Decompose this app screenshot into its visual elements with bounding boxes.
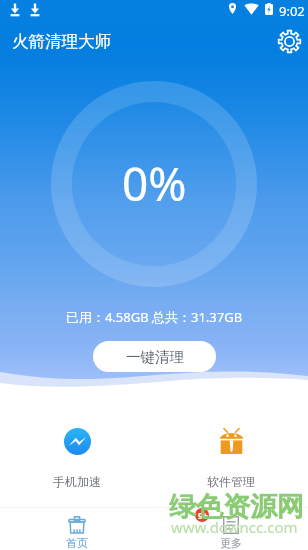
staticText: 首页 <box>66 536 88 550</box>
button[interactable]: 软件管理 <box>154 424 308 493</box>
staticText: www.downcc.com <box>171 517 298 537</box>
staticText: 软件管理 <box>207 474 255 489</box>
staticText: 手机加速 <box>53 474 101 489</box>
staticText: 一键清理 <box>126 348 184 366</box>
staticText: 更多 <box>220 536 242 550</box>
staticText: 9+ <box>198 510 208 522</box>
staticText: 9:02 <box>279 2 305 20</box>
staticText: 绿色资源网 <box>169 490 304 524</box>
button[interactable]: 更多 <box>154 508 308 550</box>
staticText: 火箭清理大师 <box>12 31 111 52</box>
button[interactable]: Settings <box>274 26 304 56</box>
button[interactable]: 一键清理 <box>93 341 216 372</box>
button[interactable]: 首页 <box>0 508 154 550</box>
staticText: 0% <box>122 152 187 215</box>
staticText: 已用：4.58GB 总共：31.37GB <box>0 308 308 326</box>
button[interactable]: 手机加速 <box>0 424 154 493</box>
